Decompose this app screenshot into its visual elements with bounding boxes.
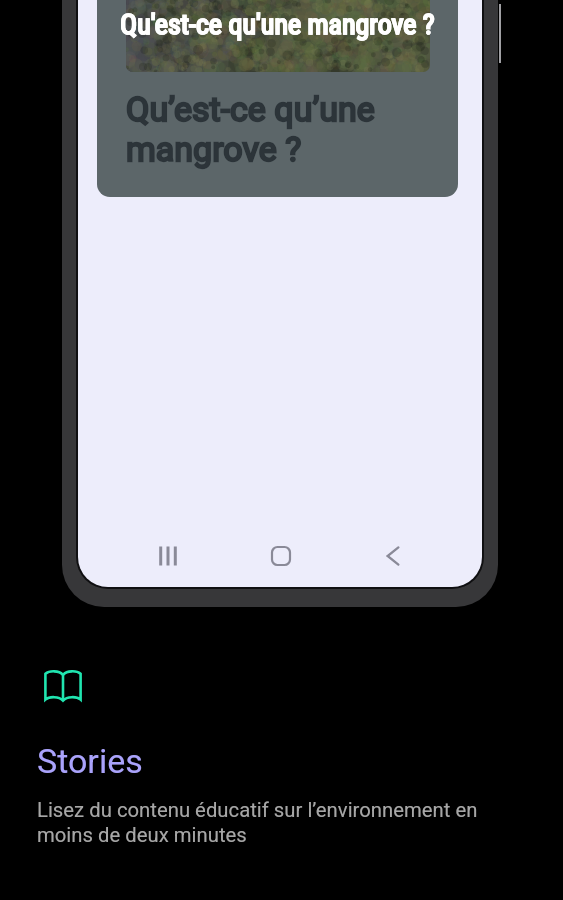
button[interactable]: Recent apps <box>146 534 190 578</box>
other: Stories <box>43 669 83 703</box>
button[interactable]: Home <box>259 534 303 578</box>
staticText: Qu'est-ce qu'une mangrove ? <box>97 8 458 41</box>
staticText: Qu’est-ce qu’une mangrove ? <box>126 89 416 169</box>
staticText: Stories <box>37 741 143 781</box>
button[interactable]: Qu'est-ce qu'une mangrove ? <box>97 0 458 197</box>
staticText: Qu'est-ce qu'une mangrove ? <box>97 8 458 41</box>
staticText: Lisez du contenu éducatif sur l’environn… <box>37 798 492 847</box>
button[interactable]: Back <box>371 534 415 578</box>
staticText: Qu’est-ce qu’une mangrove ? <box>126 89 416 169</box>
